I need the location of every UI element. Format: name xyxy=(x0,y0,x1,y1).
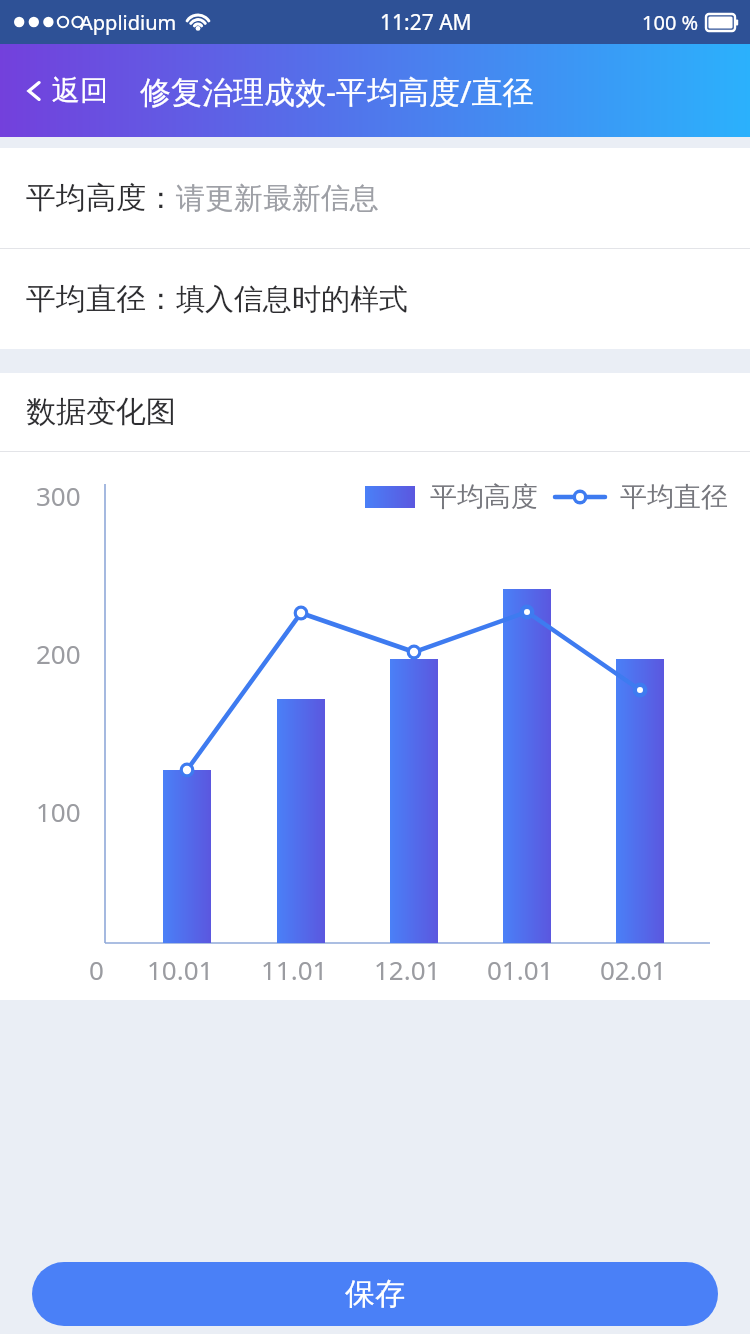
staticText: 数据变化图 xyxy=(26,393,176,431)
staticText: 11:27 AM xyxy=(380,8,472,37)
staticText: 返回 xyxy=(52,73,108,108)
staticText: Applidium xyxy=(80,9,177,36)
staticText: 300 xyxy=(36,478,81,513)
staticText: 01.01 xyxy=(487,952,554,987)
staticText: 平均直径： xyxy=(26,280,176,318)
button[interactable]: 返回 xyxy=(0,63,122,118)
staticText: 100 xyxy=(36,794,81,829)
staticText: 02.01 xyxy=(600,952,667,987)
button[interactable]: 平均高度： xyxy=(0,148,750,248)
button[interactable]: 平均直径： xyxy=(0,249,750,349)
staticText: 平均直径 xyxy=(620,480,728,514)
staticText: 12.01 xyxy=(374,952,441,987)
staticText: 11.01 xyxy=(261,952,328,987)
staticText: 平均高度： xyxy=(26,179,176,217)
staticText: 0 xyxy=(89,952,104,987)
staticText: 填入信息时的样式 xyxy=(176,281,408,318)
staticText: 保存 xyxy=(345,1275,405,1313)
staticText: 请更新最新信息 xyxy=(176,180,379,217)
staticText: 10.01 xyxy=(147,952,214,987)
staticText: 平均高度 xyxy=(430,480,538,514)
staticText: 200 xyxy=(36,636,81,671)
staticText: 100 % xyxy=(642,9,699,36)
button[interactable]: 保存 xyxy=(32,1262,718,1326)
staticText: 修复治理成效-平均高度/直径 xyxy=(140,70,534,112)
